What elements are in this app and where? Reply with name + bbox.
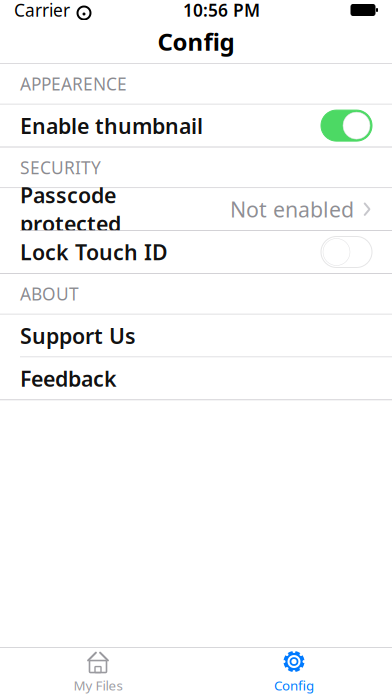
staticText: SECURITY: [20, 156, 101, 179]
button[interactable]: Lock Touch ID: [0, 231, 392, 273]
staticText: Passcode protected: [20, 181, 121, 238]
button[interactable]: Support Us: [0, 315, 392, 357]
staticText: Config: [157, 26, 234, 57]
button[interactable]: Config: [196, 648, 392, 696]
staticText: Not enabled: [230, 195, 354, 223]
staticText: Lock Touch ID: [20, 238, 168, 266]
staticText: Support Us: [20, 321, 136, 350]
button[interactable]: Feedback: [0, 357, 392, 399]
staticText: ABOUT: [20, 282, 79, 305]
staticText: My Files: [73, 676, 122, 694]
button[interactable]: Passcode protected: [0, 188, 392, 230]
staticText: APPEARENCE: [20, 72, 127, 95]
staticText: Carrier: [14, 0, 70, 21]
button[interactable]: Enable thumbnail: [0, 105, 392, 147]
staticText: Feedback: [20, 364, 117, 392]
staticText: 10:56 PM: [183, 0, 260, 21]
button[interactable]: My Files: [0, 648, 196, 696]
staticText: Enable thumbnail: [20, 111, 203, 140]
staticText: Config: [274, 676, 314, 694]
